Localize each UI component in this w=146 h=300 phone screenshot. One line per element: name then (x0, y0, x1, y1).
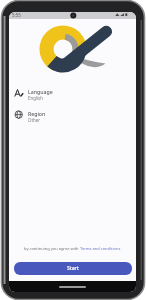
button[interactable]: Language (11, 87, 131, 101)
staticText: Language (28, 88, 53, 95)
button[interactable]: Region (11, 109, 131, 123)
staticText: Other (28, 117, 41, 123)
button[interactable]: Start (14, 262, 132, 275)
staticText: Start (67, 265, 79, 272)
staticText: by continuing you agree with (24, 246, 80, 251)
staticText: English (28, 95, 43, 101)
staticText: 5:55 (12, 12, 21, 18)
staticText: Region (28, 110, 46, 117)
button[interactable]: Terms and conditions (80, 246, 121, 251)
